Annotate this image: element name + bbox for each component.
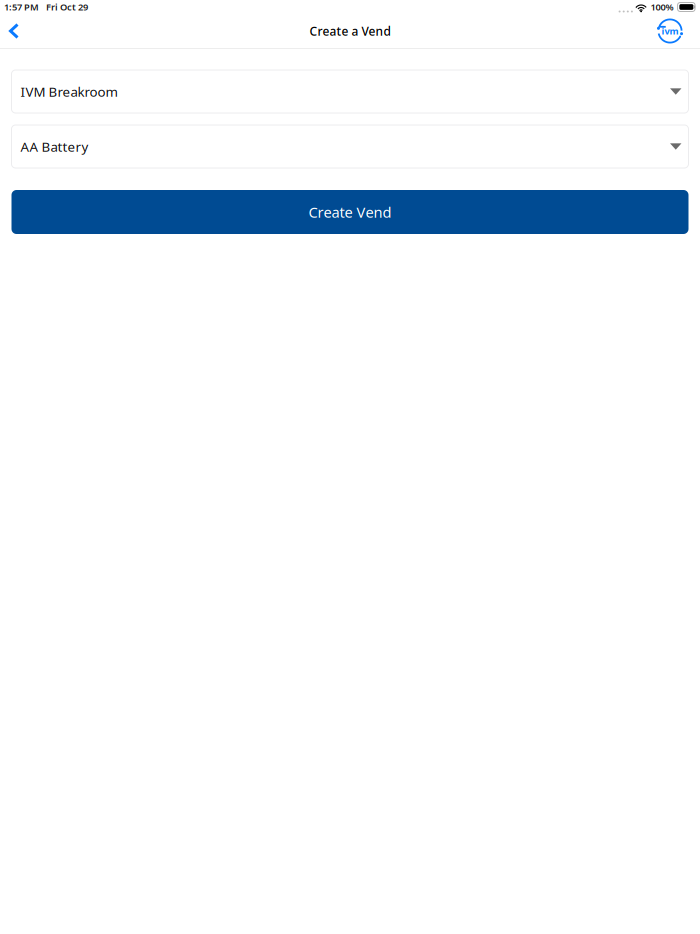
staticText: Create a Vend bbox=[309, 23, 390, 39]
staticText: Create Vend bbox=[308, 202, 391, 222]
button[interactable]: Create Vend bbox=[11, 190, 688, 234]
button[interactable]: IVM home bbox=[654, 14, 684, 48]
staticText: IVM Breakroom bbox=[20, 83, 117, 100]
button[interactable]: IVM Breakroom bbox=[11, 70, 688, 113]
button[interactable]: AA Battery bbox=[11, 125, 688, 168]
staticText: ivm bbox=[661, 25, 678, 37]
staticText: AA Battery bbox=[20, 138, 88, 155]
staticText: Fri Oct 29 bbox=[46, 1, 88, 13]
staticText: 1:57 PM bbox=[4, 1, 39, 13]
button[interactable]: Back bbox=[9, 14, 39, 48]
staticText: 100% bbox=[651, 1, 674, 13]
